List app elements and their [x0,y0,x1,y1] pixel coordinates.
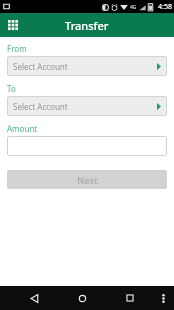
staticText: Select Account [13,61,157,72]
staticText: Amount [7,123,38,134]
staticText: 4G [130,4,137,11]
button[interactable]: Select Account [7,56,167,76]
button[interactable]: Next [7,170,167,189]
button[interactable]: Home [58,286,106,310]
button[interactable]: More options [154,286,172,310]
staticText: From [7,43,27,54]
button[interactable]: Amount input [7,136,167,156]
button[interactable]: Recent apps [106,286,154,310]
staticText: 4:58 [158,2,172,12]
button[interactable]: Select Account [7,96,167,116]
staticText: Select Account [13,101,157,112]
staticText: To [7,83,16,94]
staticText: Transfer [65,18,109,33]
button[interactable]: Back [10,286,58,310]
button[interactable]: Apps menu [3,15,23,35]
staticText: Next [77,174,98,186]
